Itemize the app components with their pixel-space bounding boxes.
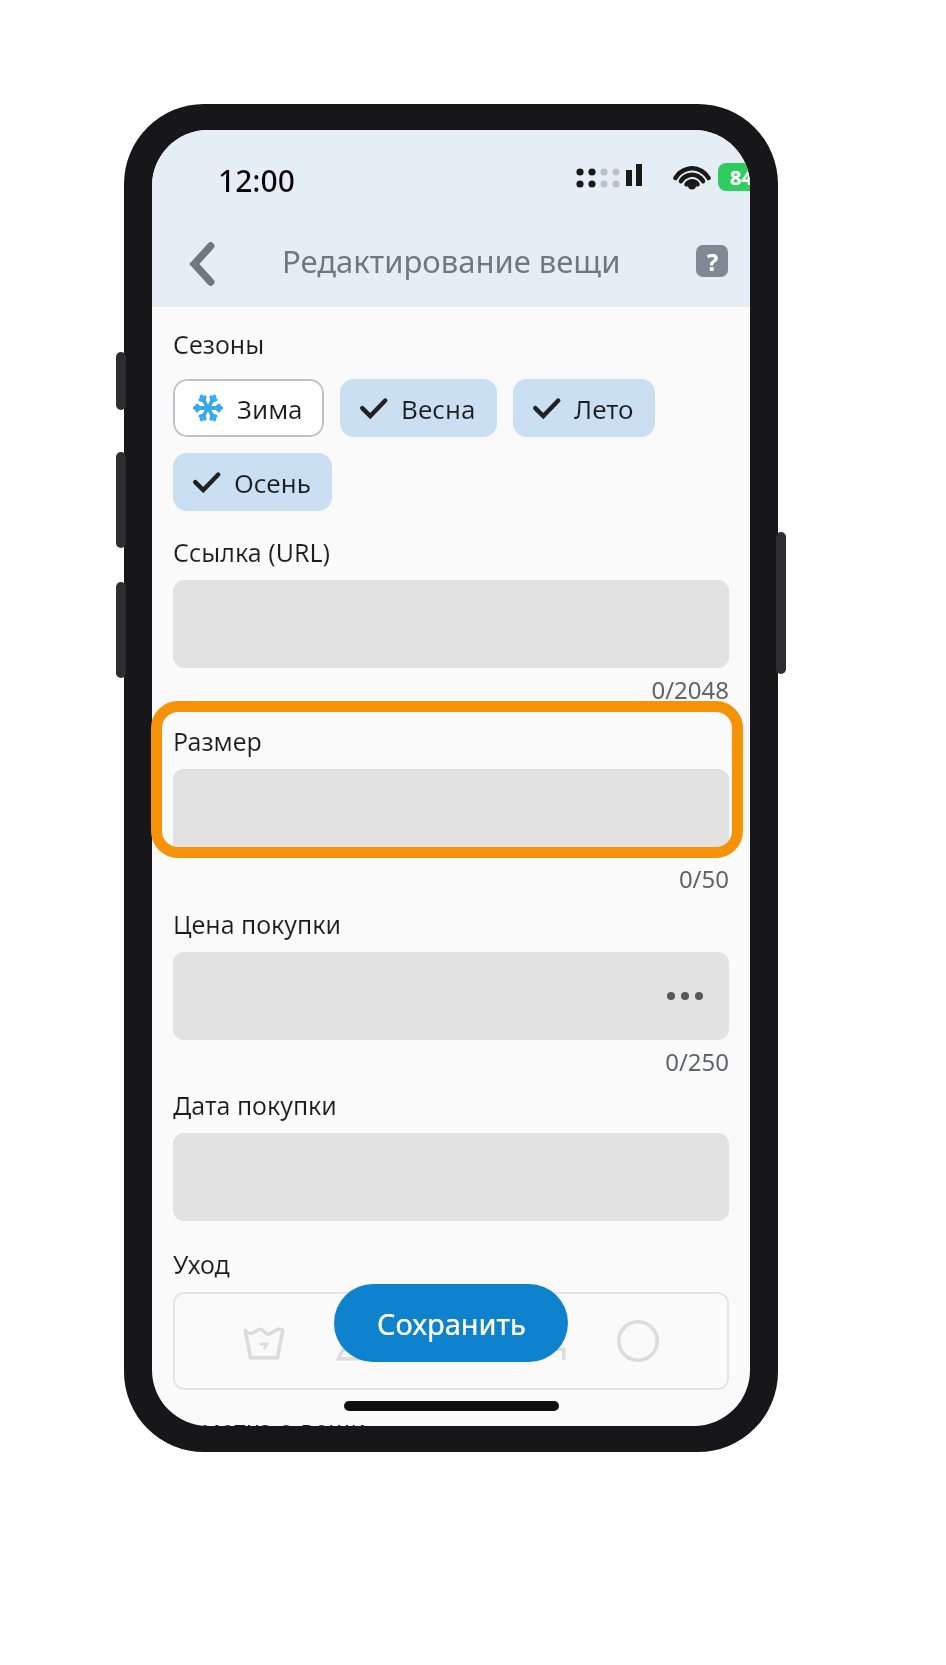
staticText: Осень bbox=[234, 465, 311, 500]
staticText: Редактирование вещи bbox=[282, 240, 621, 282]
button[interactable]: Help bbox=[696, 245, 728, 277]
staticText: 12:00 bbox=[218, 160, 295, 201]
staticText: 84 bbox=[730, 164, 750, 191]
button[interactable]: Сохранить bbox=[334, 1284, 568, 1362]
button[interactable] bbox=[173, 769, 729, 857]
button[interactable]: Лето bbox=[513, 379, 655, 437]
staticText: Заметка о вещи bbox=[173, 1412, 367, 1426]
staticText: ? bbox=[707, 246, 718, 277]
staticText: 0/50 bbox=[173, 862, 729, 895]
staticText: Сохранить bbox=[377, 1304, 526, 1343]
button[interactable]: Осень bbox=[173, 453, 332, 511]
staticText: Весна bbox=[401, 391, 476, 426]
staticText: Зима bbox=[237, 391, 303, 426]
button[interactable]: Back bbox=[172, 233, 234, 295]
button[interactable]: Весна bbox=[340, 379, 497, 437]
staticText: Лето bbox=[574, 391, 634, 426]
staticText: Размер bbox=[173, 724, 262, 758]
button[interactable]: Care symbols bbox=[173, 1292, 729, 1390]
staticText: Уход bbox=[173, 1247, 230, 1281]
staticText: 0/250 bbox=[173, 1045, 729, 1078]
staticText: 0/2048 bbox=[173, 673, 729, 706]
staticText: Ссылка (URL) bbox=[173, 535, 331, 569]
staticText: Дата покупки bbox=[173, 1088, 337, 1122]
button[interactable]: Зима bbox=[173, 379, 324, 437]
staticText: Сезоны bbox=[173, 327, 265, 361]
staticText: Цена покупки bbox=[173, 907, 341, 941]
button[interactable] bbox=[173, 952, 729, 1040]
